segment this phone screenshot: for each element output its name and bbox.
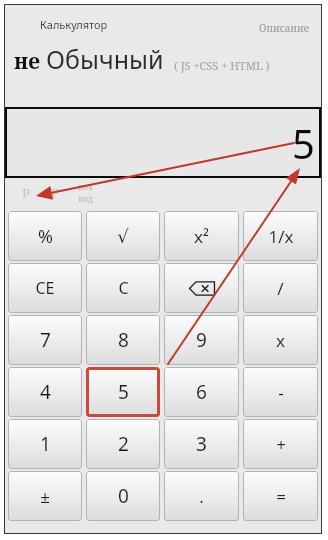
staticText: = bbox=[276, 485, 286, 508]
staticText: 4 bbox=[40, 379, 51, 405]
button[interactable]: Backspace bbox=[164, 263, 239, 313]
staticText: 6 bbox=[196, 379, 207, 405]
button[interactable]: 3 bbox=[164, 419, 239, 469]
button[interactable]: 7 bbox=[8, 315, 82, 365]
staticText: P bbox=[22, 184, 30, 202]
staticText: x² bbox=[194, 225, 209, 248]
staticText: 1/x bbox=[268, 225, 294, 248]
staticText: пок bbox=[78, 181, 93, 192]
staticText: + bbox=[276, 433, 286, 456]
button[interactable]: 5 bbox=[86, 367, 160, 417]
button[interactable]: C bbox=[86, 263, 160, 313]
button[interactable]: Описание bbox=[259, 21, 310, 35]
staticText: 3 bbox=[196, 431, 207, 457]
staticText: x bbox=[276, 329, 285, 352]
button[interactable]: 0 bbox=[86, 471, 160, 521]
staticText: под bbox=[78, 193, 93, 204]
staticText: / bbox=[277, 277, 284, 300]
staticText: 9 bbox=[196, 327, 207, 353]
staticText: √ bbox=[117, 226, 129, 247]
button[interactable]: ± bbox=[8, 471, 82, 521]
staticText: ( JS +CSS + HTML ) bbox=[174, 58, 270, 73]
staticText: ± bbox=[40, 485, 50, 508]
staticText: F bbox=[51, 184, 59, 202]
button[interactable]: 4 bbox=[8, 367, 82, 417]
staticText: не bbox=[14, 47, 40, 76]
staticText: Обычный bbox=[46, 42, 164, 76]
button[interactable]: 1 bbox=[8, 419, 82, 469]
button[interactable]: CE bbox=[8, 263, 82, 313]
button[interactable]: √ bbox=[86, 211, 160, 261]
button[interactable]: % bbox=[8, 211, 82, 261]
staticText: . bbox=[199, 485, 204, 508]
staticText: 5 bbox=[292, 116, 315, 170]
button[interactable]: x bbox=[243, 315, 318, 365]
button[interactable]: = bbox=[243, 471, 318, 521]
button[interactable]: - bbox=[243, 367, 318, 417]
staticText: 0 bbox=[118, 483, 129, 509]
staticText: - bbox=[278, 381, 284, 404]
button[interactable]: . bbox=[164, 471, 239, 521]
staticText: 7 bbox=[40, 327, 51, 353]
staticText: 2 bbox=[118, 431, 129, 457]
button[interactable]: 9 bbox=[164, 315, 239, 365]
staticText: CE bbox=[35, 277, 55, 299]
button[interactable]: 8 bbox=[86, 315, 160, 365]
staticText: 5 bbox=[118, 379, 129, 405]
button[interactable]: 5 bbox=[5, 107, 321, 178]
button[interactable]: 2 bbox=[86, 419, 160, 469]
button[interactable]: 6 bbox=[164, 367, 239, 417]
staticText: 8 bbox=[118, 327, 129, 353]
button[interactable]: + bbox=[243, 419, 318, 469]
button[interactable]: Калькулятор bbox=[40, 17, 108, 32]
button[interactable]: / bbox=[243, 263, 318, 313]
staticText: % bbox=[38, 224, 53, 249]
staticText: 1 bbox=[40, 431, 51, 457]
button[interactable]: 1/x bbox=[243, 211, 318, 261]
staticText: C bbox=[118, 277, 129, 299]
button[interactable]: x² bbox=[164, 211, 239, 261]
